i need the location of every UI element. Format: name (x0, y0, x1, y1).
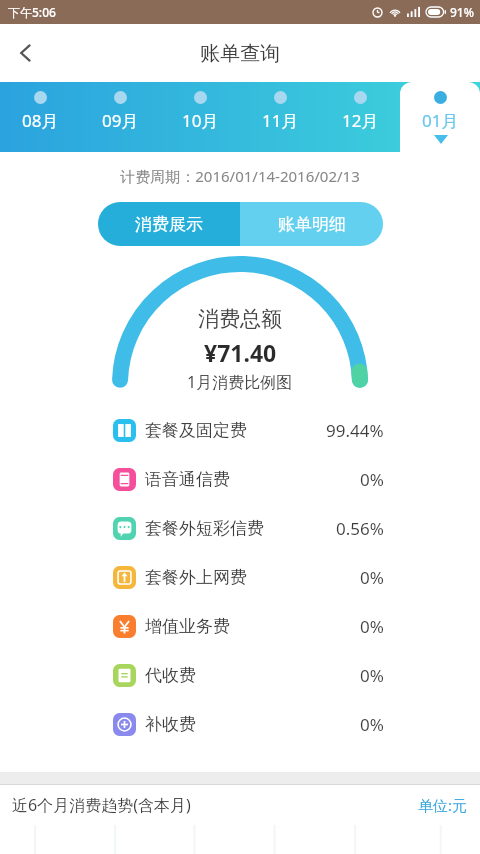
staticText: 1月消费比例图 (187, 371, 293, 393)
staticText: 语音通信费 (145, 469, 230, 490)
staticText: 01月 (422, 109, 459, 132)
staticText: 账单查询 (200, 41, 280, 66)
staticText: 单位:元 (418, 795, 468, 815)
staticText: 0% (360, 615, 384, 638)
staticText: 消费总额 (198, 306, 282, 332)
button[interactable]: 增值业务费 (0, 602, 480, 651)
button[interactable]: 语音通信费 (0, 455, 480, 504)
button[interactable]: 01月 (400, 82, 480, 152)
staticText: 09月 (102, 109, 139, 132)
button[interactable]: Back (0, 27, 52, 79)
button[interactable]: 套餐及固定费 (0, 406, 480, 455)
button[interactable]: 套餐外上网费 (0, 553, 480, 602)
staticText: ¥71.40 (204, 337, 277, 368)
staticText: 计费周期：2016/01/14-2016/02/13 (0, 166, 480, 186)
staticText: 近6个月消费趋势(含本月) (12, 794, 191, 816)
button[interactable]: 消费展示 (98, 202, 240, 246)
staticText: 账单明细 (278, 214, 346, 235)
button[interactable]: 账单明细 (240, 202, 383, 246)
staticText: 12月 (342, 109, 379, 132)
staticText: 11月 (262, 109, 299, 132)
staticText: 补收费 (145, 714, 196, 735)
button[interactable]: 08月 (0, 82, 80, 152)
staticText: 下午5:06 (8, 4, 56, 20)
staticText: 91% (450, 4, 474, 20)
staticText: 0% (360, 713, 384, 736)
button[interactable]: 09月 (80, 82, 160, 152)
button[interactable]: 11月 (240, 82, 320, 152)
staticText: 08月 (22, 109, 59, 132)
button[interactable]: 套餐外短彩信费 (0, 504, 480, 553)
staticText: 10月 (182, 109, 219, 132)
staticText: 套餐外上网费 (145, 567, 247, 588)
staticText: 99.44% (326, 419, 384, 442)
button[interactable]: 代收费 (0, 651, 480, 700)
staticText: 0.56% (336, 517, 384, 540)
button[interactable]: 10月 (160, 82, 240, 152)
staticText: 0% (360, 468, 384, 491)
staticText: 消费展示 (135, 214, 203, 235)
staticText: 套餐外短彩信费 (145, 518, 264, 539)
staticText: 代收费 (145, 665, 196, 686)
staticText: 增值业务费 (145, 616, 230, 637)
staticText: 0% (360, 566, 384, 589)
staticText: 套餐及固定费 (145, 420, 247, 441)
button[interactable]: 12月 (320, 82, 400, 152)
button[interactable]: 补收费 (0, 700, 480, 749)
staticText: 0% (360, 664, 384, 687)
